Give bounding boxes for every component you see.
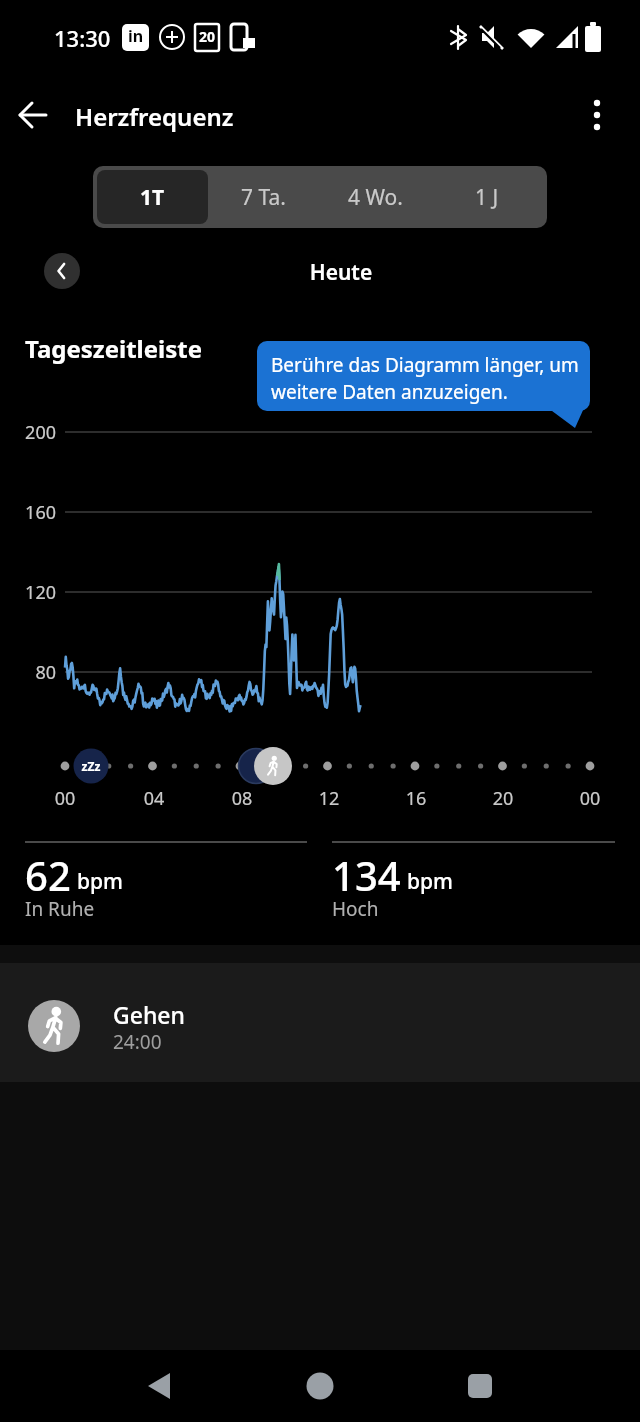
staticText: 20 [195,27,219,46]
staticText: 80 [6,660,56,685]
button[interactable] [280,1350,360,1422]
button[interactable] [575,92,620,138]
button[interactable]: 1T [97,170,208,224]
staticText: 00 [45,786,85,811]
staticText: 24:00 [113,1029,162,1055]
button[interactable] [440,1350,520,1422]
staticText: 08 [222,786,262,811]
staticText: in [122,25,149,47]
button[interactable] [0,963,640,1082]
staticText: 200 [6,420,56,445]
button[interactable]: 7 Ta. [208,170,319,224]
button[interactable] [10,92,60,138]
staticText: Berühre das Diagramm länger, um weitere … [271,352,579,405]
staticText: 16 [396,786,436,811]
staticText: bpm [77,867,123,896]
staticText: 62 [25,848,71,902]
staticText: Hoch [332,896,379,922]
staticText: 1T [140,183,165,212]
staticText: 134 [332,848,401,902]
staticText: In Ruhe [25,896,95,922]
staticText: Gehen [113,999,185,1030]
staticText: 12 [309,786,349,811]
staticText: 00 [570,786,610,811]
staticText: 120 [6,580,56,605]
staticText: Tageszeitleiste [25,332,203,365]
staticText: 04 [134,786,174,811]
staticText: 4 Wo. [348,183,403,212]
staticText: Heute [21,258,640,287]
button[interactable]: 1 J [431,170,543,224]
button[interactable] [44,253,80,289]
staticText: 13:30 [54,23,111,53]
staticText: bpm [407,867,453,896]
button[interactable]: 4 Wo. [319,170,431,224]
staticText: 20 [483,786,523,811]
staticText: 160 [6,500,56,525]
staticText: zZz [74,758,108,774]
staticText: 7 Ta. [241,183,286,212]
staticText: Herzfrequenz [75,100,234,133]
staticText: 1 J [475,183,499,212]
button[interactable] [120,1350,200,1422]
